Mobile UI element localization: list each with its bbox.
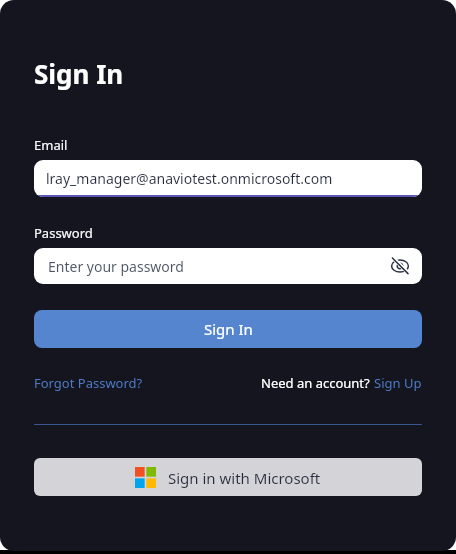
staticText: lray_manager@anaviotest.onmicrosoft.com: [46, 169, 333, 188]
staticText: Enter your password: [48, 257, 184, 276]
staticText: Sign In: [34, 56, 124, 91]
staticText: Email: [34, 136, 68, 154]
staticText: Password: [34, 224, 93, 242]
staticText: Need an account?: [261, 374, 374, 392]
staticText: Forgot Password?: [34, 374, 143, 392]
staticText: Sign Up: [374, 374, 422, 392]
staticText: Sign in with Microsoft: [168, 468, 321, 488]
staticText: Sign In: [204, 319, 253, 339]
